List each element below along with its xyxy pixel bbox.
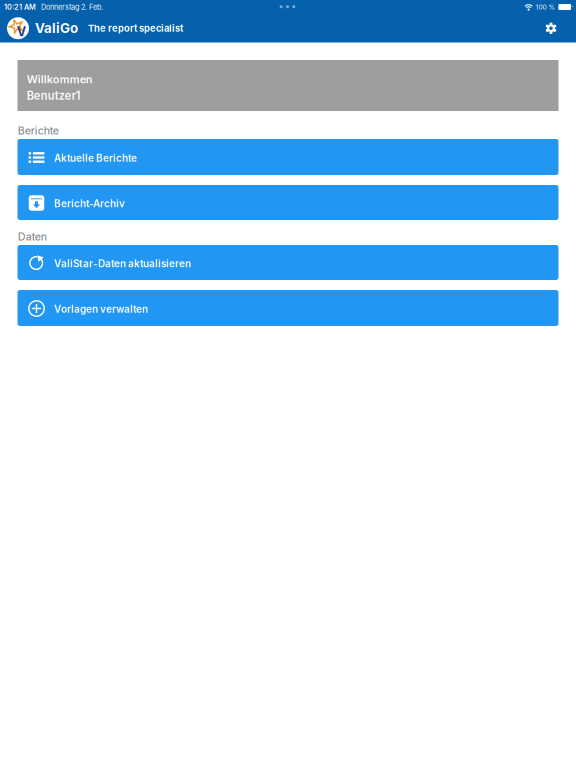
- staticText: The report specialist: [88, 23, 183, 34]
- staticText: Bericht-Archiv: [54, 198, 125, 210]
- staticText: ValiGo: [35, 20, 78, 36]
- staticText: Donnerstag 2. Feb.: [41, 3, 103, 11]
- button[interactable]: Vorlagen verwalten: [17, 290, 558, 326]
- button[interactable]: Aktuelle Berichte: [17, 139, 558, 175]
- staticText: ValiStar-Daten aktualisieren: [54, 258, 191, 270]
- staticText: Daten: [18, 230, 47, 243]
- staticText: V: [17, 24, 26, 39]
- staticText: Willkommen: [27, 73, 93, 86]
- button[interactable]: ValiStar-Daten aktualisieren: [17, 245, 558, 280]
- button[interactable]: Bericht-Archiv: [17, 185, 558, 220]
- button[interactable]: Settings: [534, 14, 568, 42]
- staticText: 100 %: [535, 3, 555, 11]
- staticText: Berichte: [18, 124, 59, 137]
- staticText: 10:21 AM: [4, 3, 36, 11]
- staticText: Vorlagen verwalten: [54, 303, 148, 315]
- staticText: Aktuelle Berichte: [54, 152, 137, 164]
- staticText: Benutzer1: [27, 89, 81, 102]
